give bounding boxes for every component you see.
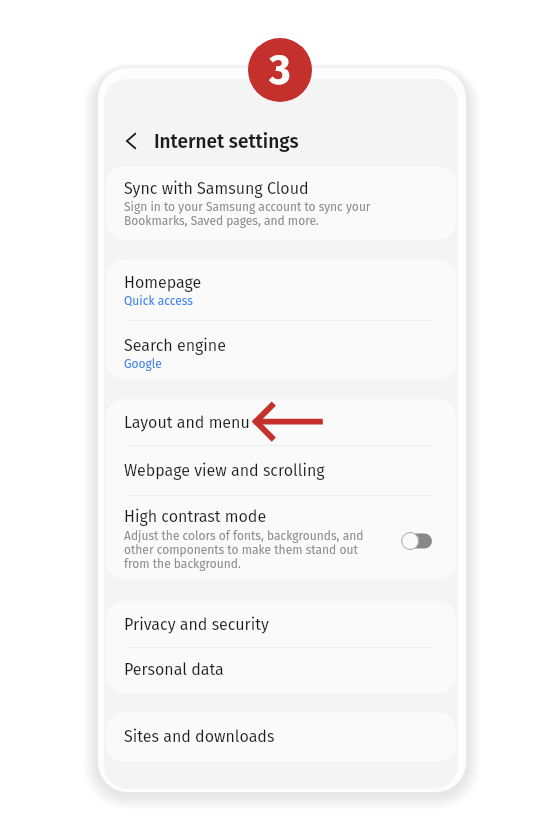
staticText: Google: [124, 357, 162, 371]
button[interactable]: High contrast mode toggle: [401, 532, 432, 550]
staticText: Personal data: [124, 660, 224, 679]
button[interactable]: Back: [104, 118, 458, 164]
staticText: Sites and downloads: [124, 727, 275, 746]
staticText: Adjust the colors of fonts, backgrounds,…: [124, 529, 364, 571]
button[interactable]: Search engine: [106, 320, 456, 379]
button[interactable]: Sites and downloads: [106, 712, 456, 762]
button[interactable]: Webpage view and scrolling: [106, 445, 456, 491]
staticText: Quick access: [124, 294, 193, 308]
button[interactable]: Privacy and security: [106, 601, 456, 647]
staticText: Sign in to your Samsung account to sync …: [124, 200, 371, 228]
staticText: Webpage view and scrolling: [124, 461, 325, 480]
button[interactable]: Homepage: [106, 260, 456, 320]
staticText: Layout and menu: [124, 413, 250, 432]
staticText: Privacy and security: [124, 615, 269, 634]
staticText: Internet settings: [154, 130, 299, 153]
button[interactable]: Back: [120, 130, 142, 152]
button[interactable]: High contrast mode: [106, 495, 456, 579]
staticText: Homepage: [124, 273, 202, 292]
staticText: High contrast mode: [124, 507, 267, 526]
button[interactable]: Layout and menu: [106, 399, 456, 445]
button[interactable]: Personal data: [106, 646, 456, 692]
staticText: Sync with Samsung Cloud: [124, 179, 309, 198]
button[interactable]: Sync with Samsung Cloud: [106, 166, 456, 240]
staticText: Search engine: [124, 336, 226, 355]
staticText: 3: [269, 46, 291, 95]
